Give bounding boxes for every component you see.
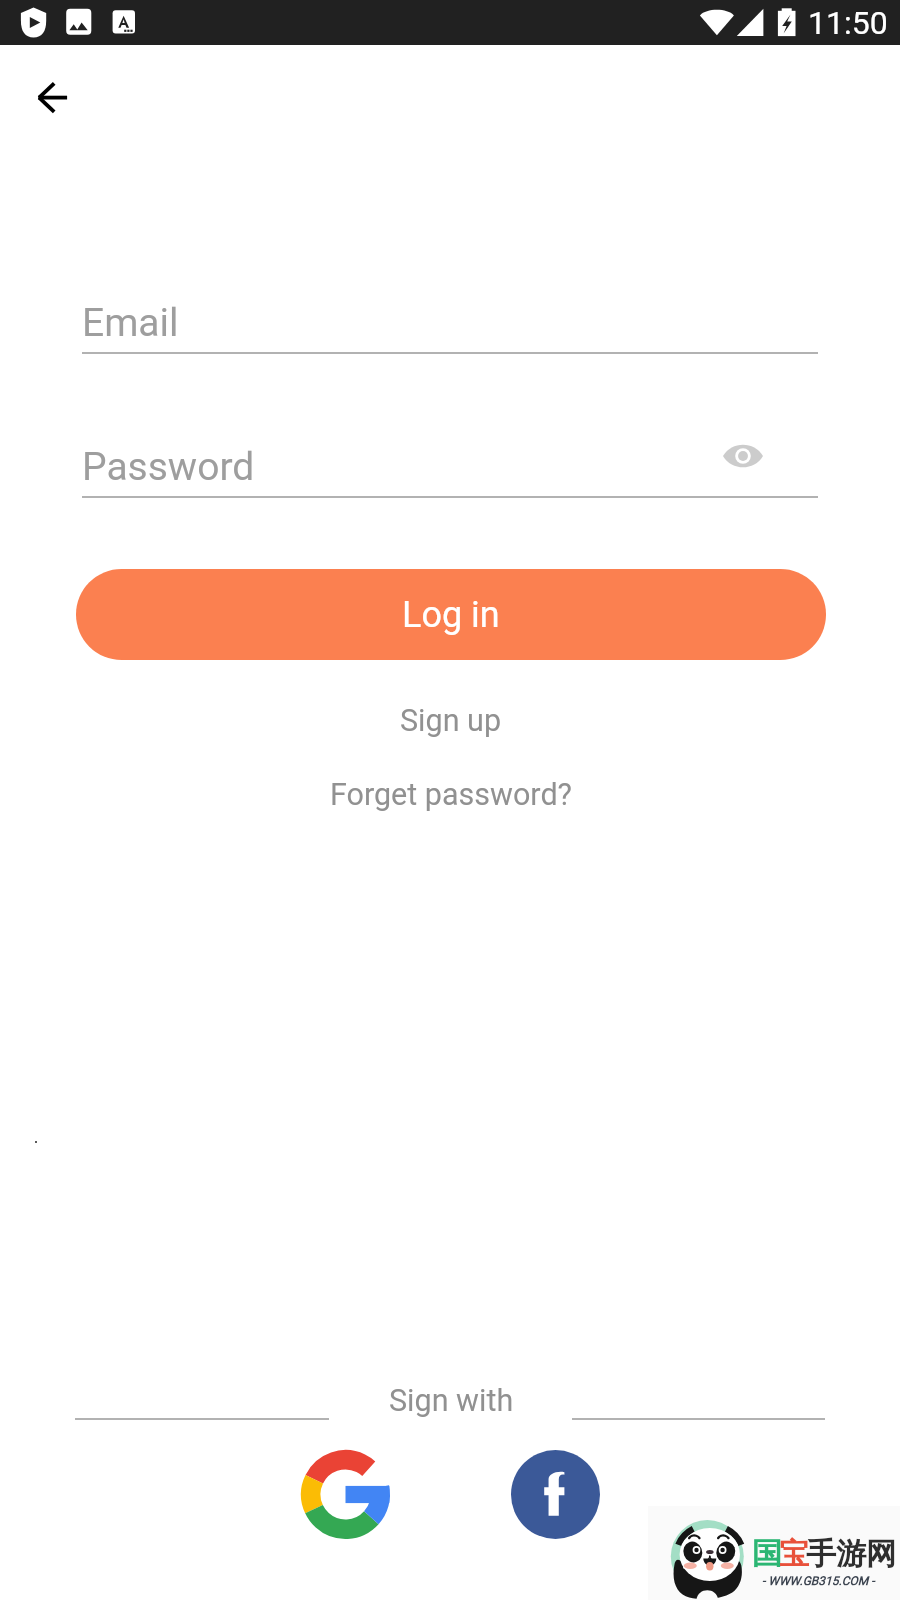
staticText: 手游网	[806, 1535, 896, 1573]
button[interactable]: Log in	[76, 569, 826, 660]
button[interactable]: Back	[16, 61, 88, 133]
staticText: Log in	[402, 594, 500, 636]
button[interactable]: Forget password?	[321, 771, 581, 819]
staticText: Sign with	[389, 1383, 514, 1419]
staticText: Password	[82, 444, 255, 490]
staticText: Email	[82, 300, 179, 346]
staticText: Forget password?	[330, 777, 573, 813]
staticText: 11:50	[808, 4, 888, 42]
staticText: 宝	[779, 1535, 809, 1573]
button[interactable]: Sign up	[371, 697, 531, 745]
staticText: 国	[752, 1535, 782, 1573]
button[interactable]: Password	[80, 443, 824, 497]
staticText: - WWW.GB315.COM -	[762, 1574, 875, 1588]
button[interactable]: Sign in with Facebook	[511, 1450, 600, 1539]
button[interactable]: Sign in with Google	[301, 1450, 390, 1539]
staticText: Sign up	[400, 703, 502, 739]
button[interactable]: Email	[80, 300, 824, 354]
button[interactable]: Show password	[715, 428, 771, 484]
